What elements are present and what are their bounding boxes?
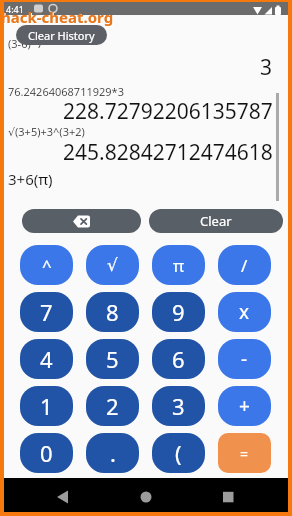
staticText: hack-cheat.org (2, 8, 115, 28)
staticText: √ (107, 255, 118, 275)
staticText: + (239, 393, 250, 419)
button[interactable]: 3 (152, 386, 205, 426)
button[interactable]: Clear (149, 209, 283, 233)
button[interactable]: / (218, 245, 271, 285)
button[interactable]: π (152, 245, 205, 285)
button[interactable]: 8 (86, 292, 139, 332)
staticText: 228.72792206135787 (63, 97, 273, 126)
button[interactable] (22, 209, 141, 233)
button[interactable]: 7 (20, 292, 73, 332)
button[interactable]: 9 (152, 292, 205, 332)
staticText: - (241, 346, 248, 372)
button[interactable]: x (218, 292, 271, 332)
staticText: 8 (106, 297, 119, 327)
staticText: . (110, 438, 116, 468)
button[interactable]: 1 (20, 386, 73, 426)
staticText: 4:41 (6, 3, 24, 15)
staticText: √(3+5)+3^(3+2) (8, 124, 85, 139)
button[interactable]: + (218, 386, 271, 426)
button[interactable]: ^ (20, 245, 73, 285)
staticText: 76.24264068711929*3 (8, 84, 124, 99)
staticText: 3 (260, 53, 273, 82)
button[interactable]: 4 (20, 339, 73, 379)
staticText: ( (175, 438, 182, 468)
staticText: / (241, 254, 248, 277)
button[interactable]: 6 (152, 339, 205, 379)
button[interactable]: - (218, 339, 271, 379)
button[interactable]: . (86, 433, 139, 473)
button[interactable]: = (218, 433, 271, 473)
staticText: 4 (40, 344, 53, 374)
staticText: 6 (172, 344, 185, 374)
staticText: 7 (40, 297, 53, 327)
staticText: 0 (40, 438, 53, 468)
button[interactable]: 2 (86, 386, 139, 426)
staticText: = (240, 444, 249, 463)
staticText: 5 (106, 344, 119, 374)
button[interactable]: 0 (20, 433, 73, 473)
staticText: x (239, 299, 250, 325)
staticText: ^ (42, 254, 52, 277)
staticText: 2 (106, 391, 119, 421)
staticText: 1 (40, 391, 53, 421)
staticText: 9 (172, 297, 185, 327)
button[interactable]: 5 (86, 339, 139, 379)
button[interactable]: √ (86, 245, 139, 285)
staticText: Clear History (28, 28, 95, 43)
staticText: 3+6(π) (8, 169, 53, 189)
staticText: hack-cheat.org (1, 7, 114, 27)
staticText: 245.82842712474618 (63, 138, 273, 167)
button[interactable]: ( (152, 433, 205, 473)
staticText: 3 (172, 391, 185, 421)
staticText: π (173, 254, 185, 277)
staticText: Clear (200, 212, 232, 230)
staticText: (3-6)*7 (8, 36, 44, 51)
